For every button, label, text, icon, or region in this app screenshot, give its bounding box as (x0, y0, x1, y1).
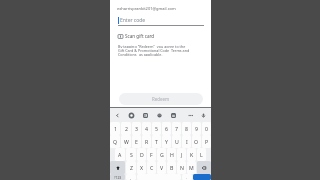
button[interactable]: Voice input (201, 113, 206, 118)
staticText: I (186, 138, 188, 145)
button[interactable]: Previous (115, 113, 120, 118)
staticText: V (160, 164, 164, 171)
button[interactable]: Y (162, 135, 171, 148)
button[interactable]: Period (182, 174, 192, 180)
button[interactable]: Search (193, 174, 211, 180)
button[interactable]: T (152, 135, 161, 148)
staticText: N (180, 164, 184, 171)
staticText: 4 (145, 125, 148, 132)
button[interactable]: H (167, 148, 176, 161)
button[interactable]: G (157, 148, 166, 161)
button[interactable]: N (177, 161, 186, 174)
button[interactable]: U (172, 135, 181, 148)
button[interactable]: 1 (110, 122, 120, 135)
button[interactable]: S (126, 148, 136, 161)
staticText: exharrisprankit201@gmail.com (117, 6, 176, 11)
button[interactable]: D (137, 148, 146, 161)
button[interactable]: Translate (171, 113, 176, 118)
staticText: C (150, 164, 154, 171)
staticText: Scan gift card (125, 33, 155, 39)
button[interactable]: 5 (152, 122, 161, 135)
button[interactable]: J (177, 148, 186, 161)
button[interactable]: Settings (129, 113, 134, 118)
staticText: 6 (165, 125, 168, 132)
button[interactable]: 4 (142, 122, 151, 135)
staticText: . (186, 175, 188, 180)
staticText: Conditions (118, 52, 137, 56)
staticText: O (194, 138, 199, 145)
staticText: Terms and (171, 48, 190, 52)
staticText: D (140, 151, 144, 158)
button[interactable]: Scan gift card (118, 33, 155, 39)
button[interactable]: 2 (121, 122, 131, 135)
staticText: Y (165, 138, 168, 145)
button[interactable]: B (167, 161, 176, 174)
staticText: R (145, 138, 149, 145)
button[interactable]: Stickers (143, 113, 148, 118)
staticText: W (124, 138, 129, 145)
staticText: J (181, 151, 183, 158)
button[interactable]: I (182, 135, 191, 148)
staticText: 9 (195, 125, 198, 132)
staticText: P (205, 138, 209, 145)
staticText: H (170, 151, 174, 158)
staticText: K (190, 151, 194, 158)
button[interactable]: K (187, 148, 196, 161)
button[interactable]: 8 (182, 122, 191, 135)
staticText: M (189, 164, 194, 171)
staticText: E (135, 138, 138, 145)
button[interactable]: ?123 (110, 174, 125, 180)
staticText: 8 (185, 125, 188, 132)
staticText: T (155, 138, 158, 145)
staticText: 0 (205, 125, 208, 132)
button[interactable]: L (197, 148, 206, 161)
staticText: 5 (155, 125, 158, 132)
button[interactable]: A (115, 148, 125, 161)
staticText: L (200, 151, 203, 158)
button[interactable]: F (147, 148, 156, 161)
button[interactable]: Backspace (197, 161, 211, 174)
button[interactable]: X (137, 161, 146, 174)
staticText: 7 (175, 125, 178, 132)
button[interactable]: R (142, 135, 151, 148)
button[interactable]: C (147, 161, 156, 174)
staticText: Z (130, 164, 133, 171)
button[interactable]: 0 (202, 122, 211, 135)
staticText: A (118, 151, 122, 158)
staticText: S (130, 151, 133, 158)
staticText: Enter code (120, 17, 146, 24)
button[interactable]: P (202, 135, 211, 148)
button[interactable]: M (187, 161, 196, 174)
staticText: G (160, 151, 164, 158)
staticText: Gift Card & Promotional Code (118, 48, 171, 52)
button[interactable]: Redeem (119, 93, 203, 105)
staticText: X (140, 164, 144, 171)
staticText: By tapping "Redeem", you agree to the (118, 44, 186, 48)
button[interactable]: Z (126, 161, 136, 174)
staticText: Redeem (152, 96, 170, 102)
staticText: , (130, 175, 132, 180)
staticText: ?123 (114, 175, 122, 180)
button[interactable]: O (192, 135, 201, 148)
button[interactable]: More options (188, 113, 193, 118)
button[interactable]: Q (110, 135, 120, 148)
staticText: Q (113, 138, 118, 145)
staticText: , as applicable. (137, 52, 163, 56)
button[interactable]: V (157, 161, 166, 174)
staticText: 3 (135, 125, 138, 132)
staticText: B (170, 164, 174, 171)
button[interactable]: Shift (110, 161, 125, 174)
button[interactable]: 7 (172, 122, 181, 135)
button[interactable]: 9 (192, 122, 201, 135)
staticText: 1 (114, 125, 117, 132)
button[interactable]: 6 (162, 122, 171, 135)
button[interactable]: Emoji (157, 113, 162, 118)
staticText: F (150, 151, 153, 158)
staticText: 2 (125, 125, 128, 132)
button[interactable]: W (121, 135, 131, 148)
staticText: U (175, 138, 179, 145)
button[interactable]: 3 (132, 122, 141, 135)
button[interactable]: E (132, 135, 141, 148)
button[interactable]: Comma (126, 174, 136, 180)
